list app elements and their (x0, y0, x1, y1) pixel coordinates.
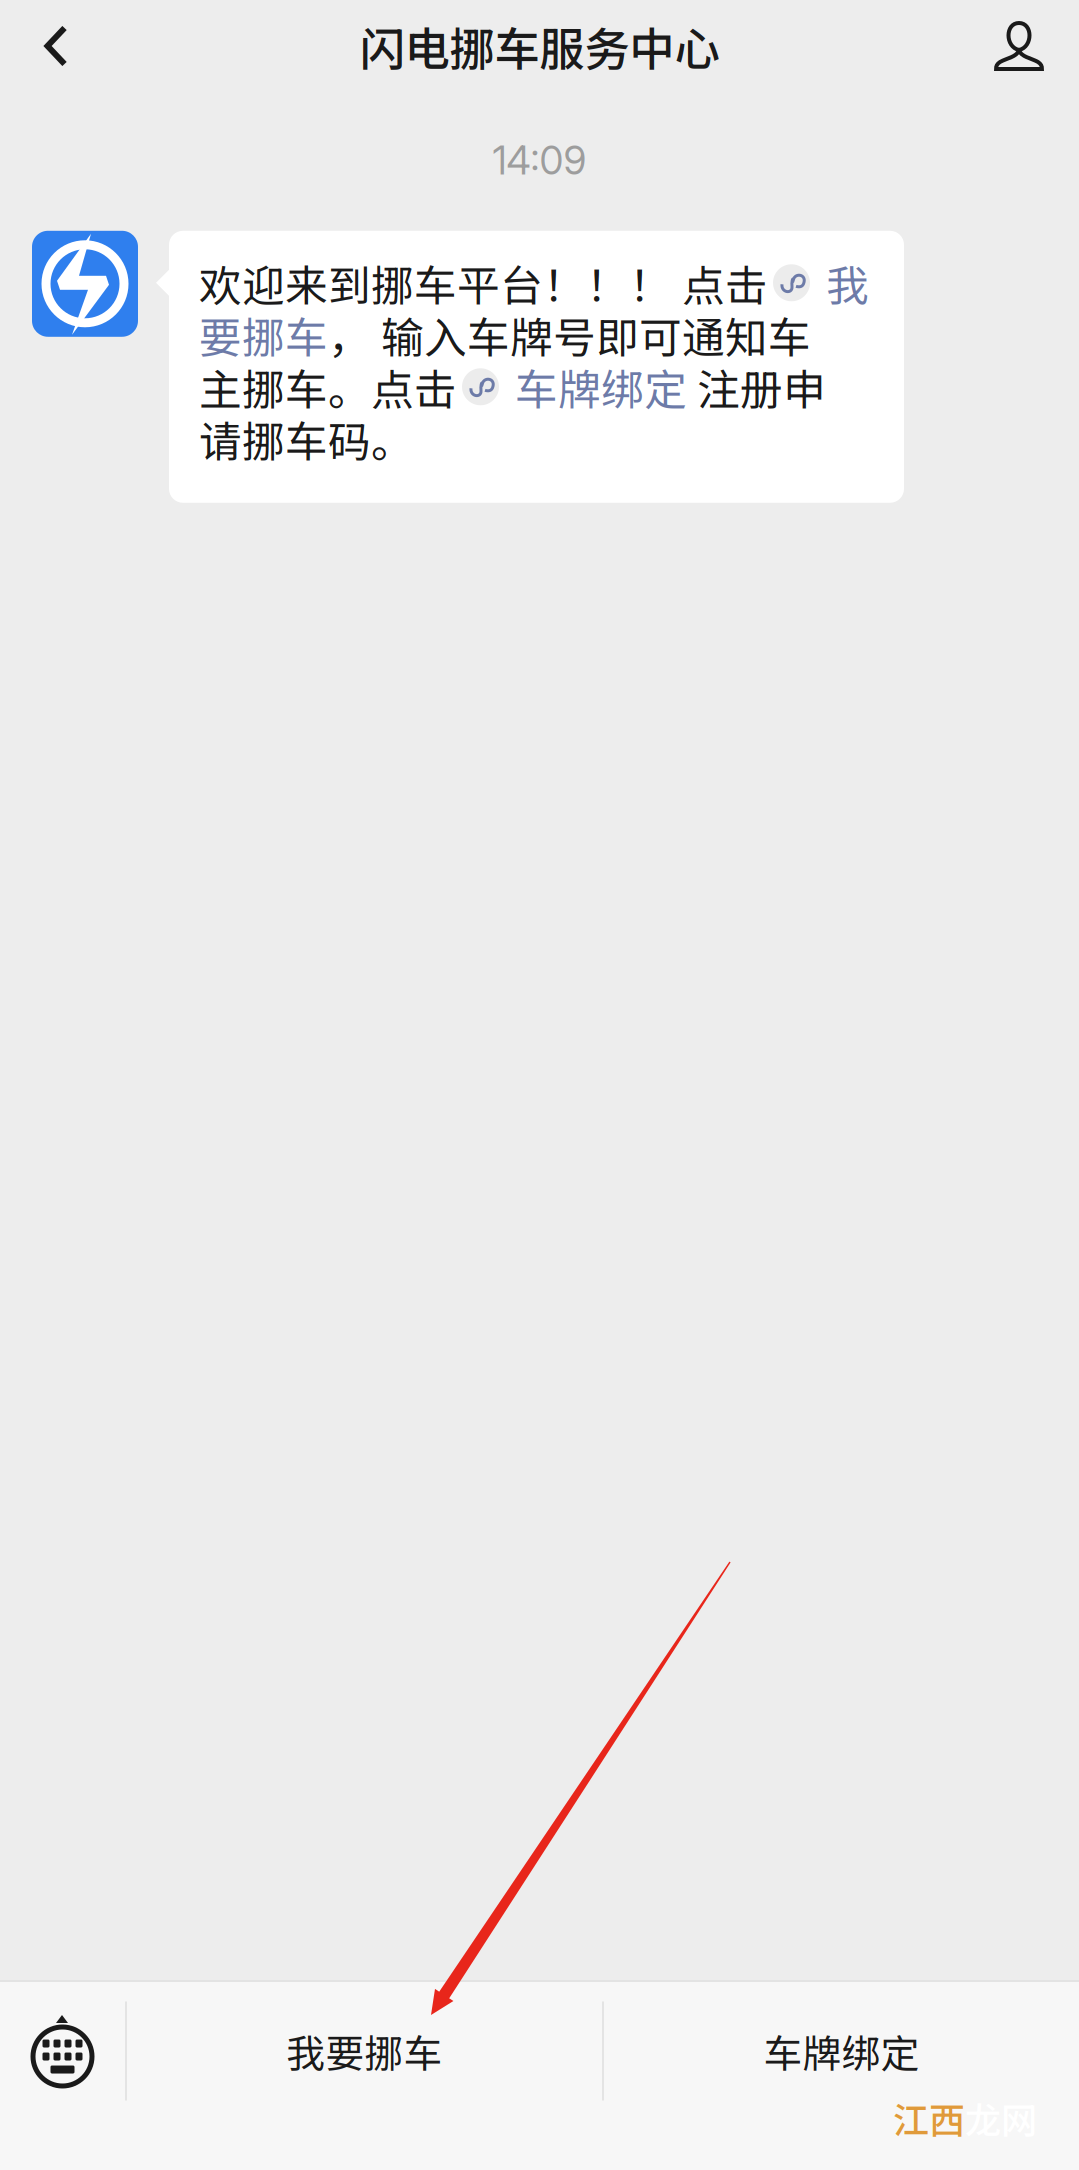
button[interactable]: Back (0, 0, 112, 93)
staticText: 我 (826, 252, 869, 314)
button[interactable]: 我要挪车 (127, 1982, 602, 2120)
button[interactable]: 车牌绑定 (604, 1982, 1079, 2120)
staticText: 要挪车 (199, 304, 328, 366)
button[interactable]: Contact profile (959, 0, 1079, 93)
staticText: ， 输入车牌号即可通知车 (328, 304, 811, 366)
staticText: 14:09 (492, 137, 586, 184)
staticText: 龙网 (965, 2092, 1037, 2144)
staticText: 我要挪车 (286, 2023, 442, 2079)
staticText: 车牌绑定 (515, 356, 687, 418)
staticText: 注册申 (687, 356, 826, 418)
staticText: 闪电挪车服务中心 (359, 13, 719, 79)
staticText: 车牌绑定 (763, 2023, 919, 2079)
button[interactable]: Keyboard (0, 1982, 125, 2120)
staticText: 江西 (893, 2092, 965, 2144)
staticText: 欢迎来到挪车平台！！！ 点击 (199, 252, 768, 314)
staticText: 请挪车码。 (199, 408, 414, 470)
staticText: 主挪车。点击 (199, 356, 457, 418)
